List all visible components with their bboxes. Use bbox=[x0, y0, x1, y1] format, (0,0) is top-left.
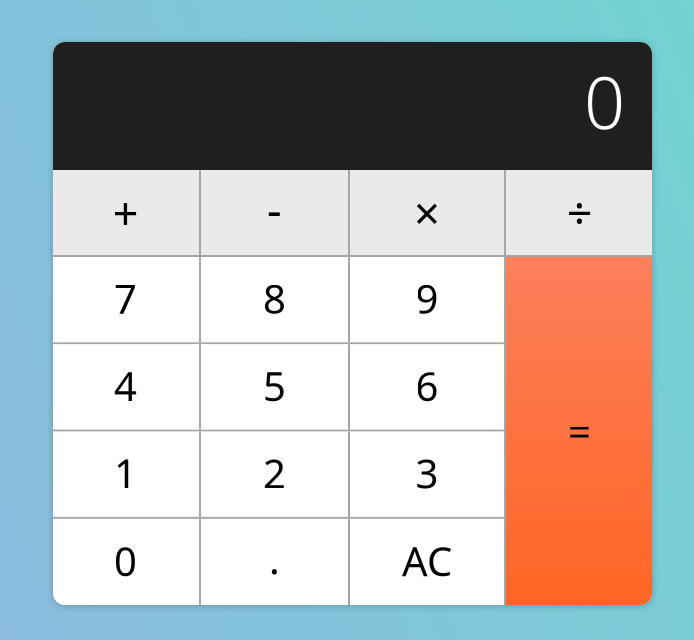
staticText: ÷ bbox=[566, 182, 592, 243]
staticText: 5 bbox=[263, 359, 286, 412]
button[interactable]: + bbox=[52, 170, 199, 255]
staticText: 0 bbox=[114, 534, 137, 587]
button[interactable]: AC bbox=[350, 519, 504, 605]
staticText: 9 bbox=[415, 272, 438, 325]
button[interactable]: 2 bbox=[201, 432, 348, 517]
button[interactable]: = bbox=[506, 257, 653, 605]
staticText: 0 bbox=[584, 53, 625, 149]
button[interactable]: 3 bbox=[350, 432, 504, 517]
button[interactable]: 0 bbox=[52, 519, 199, 605]
button[interactable]: 4 bbox=[52, 344, 199, 430]
staticText: 1 bbox=[114, 446, 137, 499]
staticText: 7 bbox=[114, 272, 137, 325]
staticText: 2 bbox=[263, 446, 286, 499]
staticText: + bbox=[112, 182, 138, 243]
staticText: AC bbox=[402, 534, 452, 587]
staticText: 4 bbox=[114, 359, 137, 412]
button[interactable]: ÷ bbox=[506, 170, 653, 255]
staticText: 6 bbox=[415, 359, 438, 412]
button[interactable]: 7 bbox=[52, 257, 199, 342]
staticText: = bbox=[568, 404, 591, 457]
staticText: - bbox=[267, 178, 282, 239]
button[interactable]: 8 bbox=[201, 257, 348, 342]
button[interactable]: 6 bbox=[350, 344, 504, 430]
button[interactable]: - bbox=[201, 170, 348, 255]
staticText: . bbox=[269, 532, 280, 585]
button[interactable]: 9 bbox=[350, 257, 504, 342]
button[interactable]: . bbox=[201, 519, 348, 605]
button[interactable]: × bbox=[350, 170, 504, 255]
staticText: × bbox=[414, 182, 440, 243]
staticText: 3 bbox=[415, 446, 438, 499]
button[interactable]: 1 bbox=[52, 432, 199, 517]
staticText: 8 bbox=[263, 272, 286, 325]
button[interactable]: 5 bbox=[201, 344, 348, 430]
